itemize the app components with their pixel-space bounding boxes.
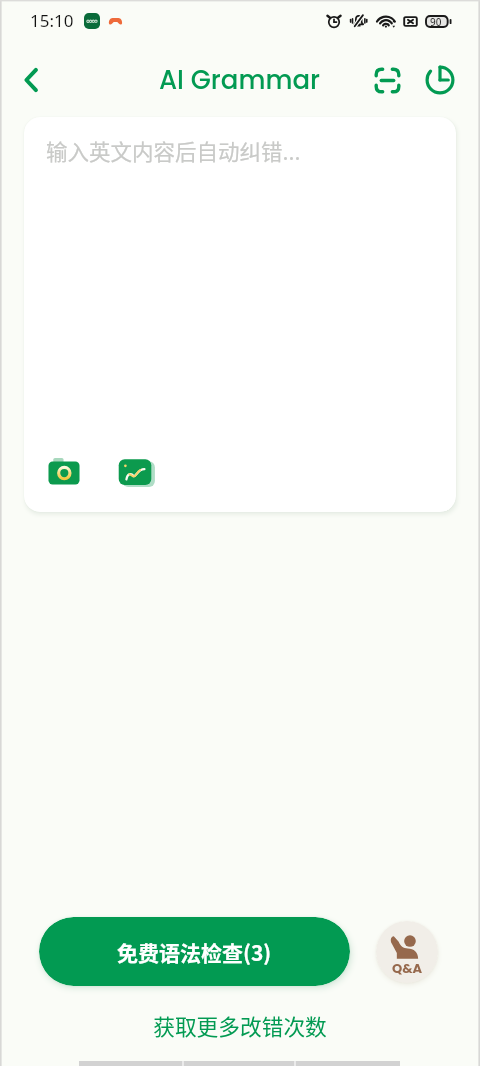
staticText: 90 (430, 15, 442, 28)
staticText: AI Grammar (159, 62, 321, 98)
staticText: 输入英文内容后自动纠错... (46, 135, 301, 166)
staticText: Q&A (392, 959, 423, 977)
button[interactable]: Back (8, 56, 56, 104)
staticText: 免费语法检查(3) (117, 937, 272, 967)
button[interactable]: Take photo (44, 447, 84, 487)
button[interactable]: 免费语法检查(3) (39, 917, 350, 986)
button[interactable]: Pick image (116, 447, 156, 487)
button[interactable]: 获取更多改错次数 (0, 1010, 480, 1041)
button[interactable]: Scan text (365, 58, 409, 102)
staticText: 15:10 (30, 9, 74, 32)
button[interactable]: Q and A (376, 921, 438, 983)
button[interactable]: 输入英文内容后自动纠错... (24, 117, 456, 512)
button[interactable]: History (418, 58, 462, 102)
